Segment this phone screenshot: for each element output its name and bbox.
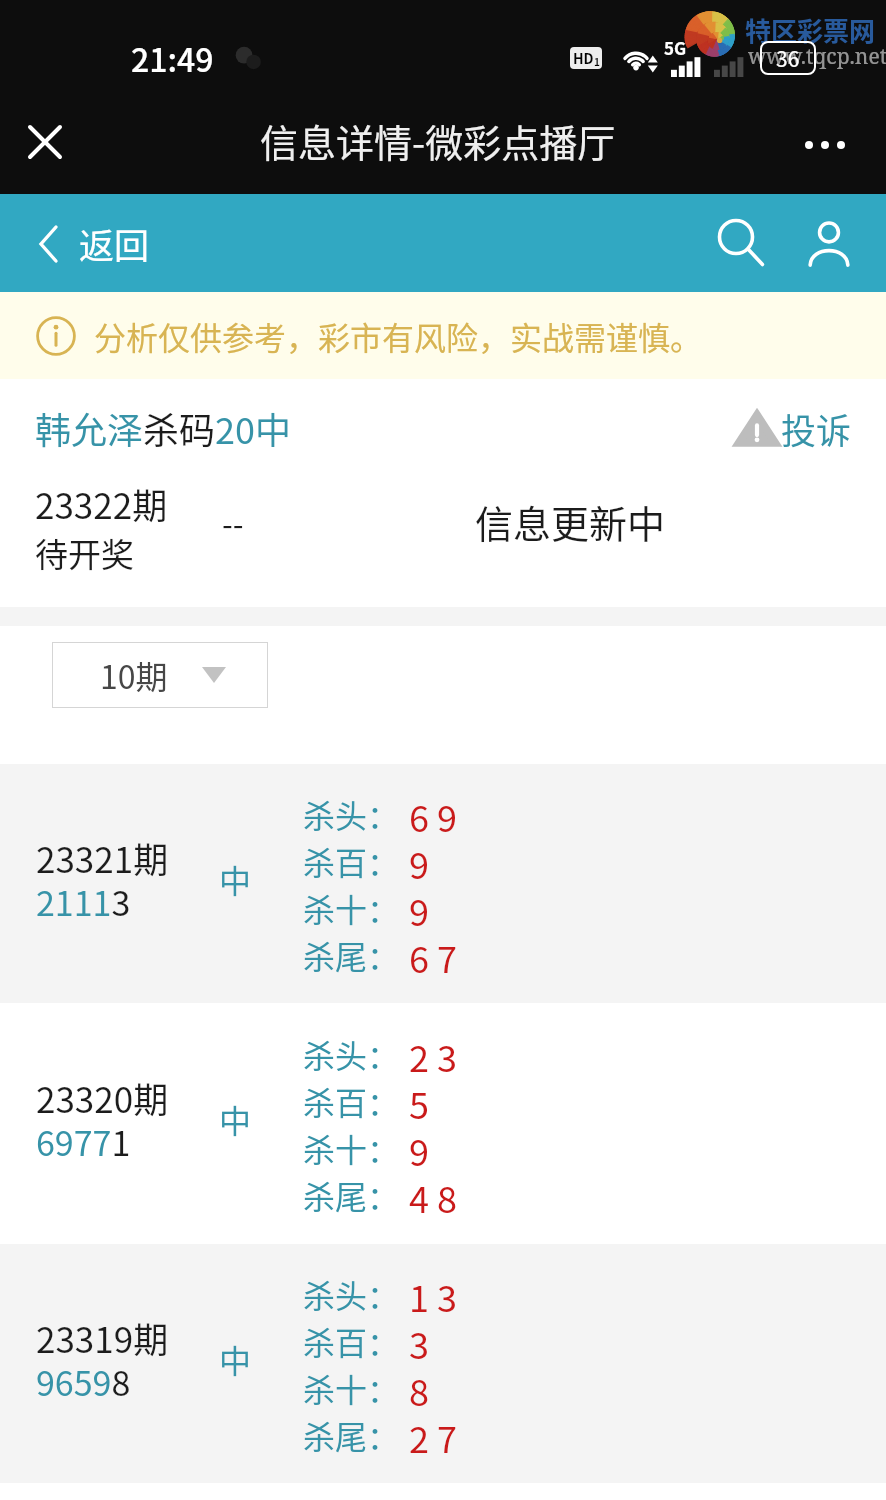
staticText: 36	[776, 43, 800, 73]
staticText: 杀十：	[303, 1365, 400, 1411]
button[interactable]: 23320期	[0, 1003, 886, 1244]
button[interactable]: 投诉	[735, 403, 852, 454]
button[interactable]: 韩允泽杀码20中	[35, 402, 291, 454]
staticText: 投诉	[781, 403, 852, 454]
staticText: 信息详情-微彩点播厅	[260, 113, 616, 168]
staticText: 中	[219, 1336, 252, 1382]
staticText: www.tqcp.net	[748, 42, 886, 71]
staticText: 杀百：	[303, 1318, 400, 1364]
staticText: HD	[573, 48, 594, 68]
staticText: 1 3	[409, 1270, 458, 1317]
staticText: 中	[219, 1096, 252, 1142]
staticText: 1	[594, 54, 600, 68]
staticText: 5	[409, 1077, 429, 1124]
button[interactable]: 返回	[38, 218, 150, 269]
staticText: 23322期	[35, 478, 168, 529]
staticText: --	[222, 500, 244, 545]
button[interactable]: 23321期	[0, 764, 886, 1003]
staticText: 4 8	[409, 1171, 458, 1218]
staticText: 2 7	[409, 1411, 458, 1458]
staticText: 21113	[36, 877, 131, 919]
staticText: 杀头：	[303, 1031, 400, 1077]
staticText: 杀百：	[303, 1078, 400, 1124]
staticText: 21:49	[131, 35, 214, 81]
staticText: 23320期	[36, 1072, 169, 1117]
staticText: 6 9	[409, 790, 458, 837]
staticText: 9	[409, 884, 429, 931]
button[interactable]: 23319期	[0, 1244, 886, 1483]
staticText: 5G	[664, 35, 687, 60]
staticText: 返回	[79, 218, 150, 269]
staticText: 中	[219, 856, 252, 902]
staticText: 分析仅供参考，彩市有风险，实战需谨慎。	[94, 313, 703, 359]
staticText: 杀十：	[303, 885, 400, 931]
staticText: 3	[409, 1317, 429, 1364]
button[interactable]: 10期	[52, 642, 268, 708]
staticText: 待开奖	[35, 529, 134, 577]
staticText: 9	[409, 837, 429, 884]
staticText: 特区彩票网	[745, 11, 876, 49]
staticText: 23319期	[36, 1312, 169, 1357]
button[interactable]: Close	[16, 113, 74, 171]
staticText: 96598	[36, 1357, 131, 1399]
staticText: 杀尾：	[303, 1412, 400, 1458]
button[interactable]: More options	[796, 116, 854, 174]
staticText: 9	[409, 1124, 429, 1171]
staticText: 10期	[100, 652, 168, 698]
staticText: 23321期	[36, 832, 169, 877]
button[interactable]: Account	[796, 210, 862, 276]
staticText: 69771	[36, 1117, 131, 1159]
staticText: 杀头：	[303, 1271, 400, 1317]
staticText: 杀头：	[303, 791, 400, 837]
staticText: 2 3	[409, 1030, 458, 1077]
staticText: 杀尾：	[303, 932, 400, 978]
staticText: 6 7	[409, 931, 458, 978]
button[interactable]: Search	[708, 210, 774, 276]
staticText: 信息更新中	[475, 494, 666, 549]
staticText: 杀百：	[303, 838, 400, 884]
staticText: 杀十：	[303, 1125, 400, 1171]
staticText: 杀尾：	[303, 1172, 400, 1218]
staticText: 8	[409, 1364, 429, 1411]
